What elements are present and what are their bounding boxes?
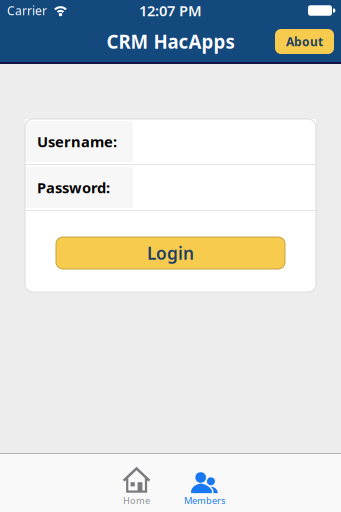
staticText: Carrier xyxy=(7,2,47,18)
button[interactable]: Home xyxy=(103,454,169,512)
staticText: Password: xyxy=(37,178,110,197)
staticText: About xyxy=(286,33,323,49)
staticText: CRM HacApps xyxy=(106,29,234,54)
staticText: 12:07 PM xyxy=(139,1,202,20)
button[interactable]: About xyxy=(275,29,334,54)
staticText: Username: xyxy=(37,132,117,151)
button[interactable]: Members xyxy=(171,454,237,512)
staticText: Members xyxy=(184,494,225,507)
staticText: Home xyxy=(123,494,150,507)
staticText: Login xyxy=(147,241,194,264)
button[interactable]: Login xyxy=(56,237,285,269)
